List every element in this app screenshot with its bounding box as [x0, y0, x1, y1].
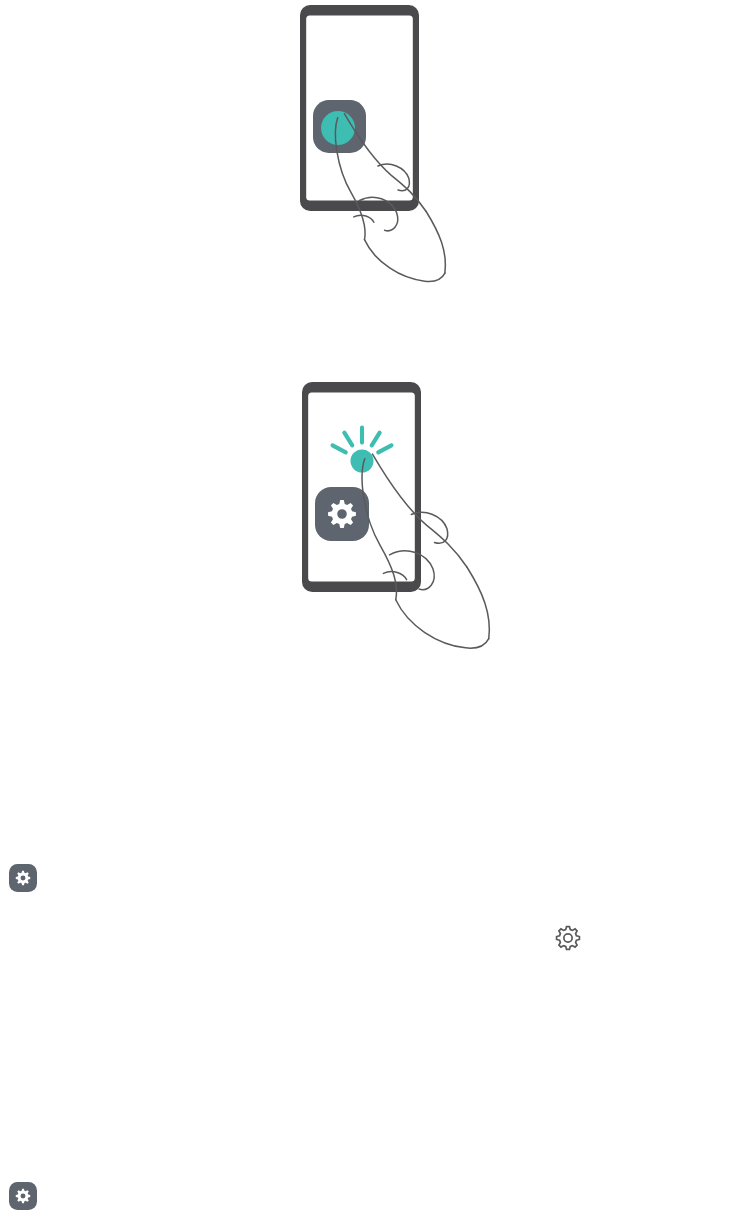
button[interactable]: Settings	[9, 864, 37, 892]
button[interactable]: Settings	[9, 1182, 37, 1210]
button[interactable]: Settings	[557, 927, 580, 950]
